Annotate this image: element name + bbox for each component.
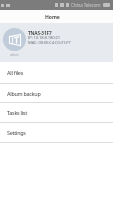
staticText: admin [10,53,19,57]
staticText: TNAS-31F7 [28,30,52,36]
staticText: MAC: 00:0E:C4:C0:31:F7 [28,40,71,46]
button[interactable]: Tasks list [0,103,113,123]
staticText: Home [45,14,60,21]
button[interactable]: All files [0,62,113,84]
button[interactable]: Album backup [0,84,113,103]
staticText: China Telecom [71,2,101,8]
staticText: IP: 10.18.8.180:21 [28,35,60,41]
staticText: Tasks list [7,109,27,116]
staticText: Settings [7,129,26,136]
staticText: All files [7,69,23,76]
staticText: Album backup [7,90,41,97]
button[interactable]: Settings [0,123,113,143]
